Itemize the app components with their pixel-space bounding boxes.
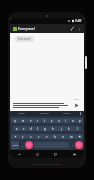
button[interactable]: f bbox=[34, 125, 41, 132]
button[interactable]: o bbox=[69, 117, 76, 124]
button[interactable]: Emoji bbox=[25, 141, 33, 149]
button[interactable]: s bbox=[20, 125, 27, 132]
button[interactable]: , bbox=[20, 141, 25, 149]
button[interactable] bbox=[10, 111, 33, 116]
button[interactable]: Attach bbox=[69, 25, 76, 32]
button[interactable] bbox=[12, 103, 71, 109]
button[interactable]: w bbox=[19, 117, 27, 124]
button[interactable]: a bbox=[13, 125, 20, 132]
staticText: . bbox=[72, 143, 73, 147]
button[interactable]: App icon bbox=[12, 26, 17, 31]
button[interactable]: Send bbox=[73, 102, 80, 109]
button[interactable]: r bbox=[34, 117, 41, 124]
staticText: ?123 bbox=[13, 144, 18, 147]
staticText: a bbox=[16, 127, 18, 131]
button[interactable]: l bbox=[73, 125, 81, 132]
button[interactable]: j bbox=[57, 125, 65, 132]
button[interactable]: n bbox=[59, 133, 67, 140]
button[interactable]: Voice input bbox=[77, 111, 84, 116]
staticText: k bbox=[68, 127, 70, 131]
staticText: b bbox=[54, 135, 56, 139]
staticText: Everyone! bbox=[18, 26, 35, 31]
staticText: l bbox=[77, 127, 78, 131]
button[interactable]: . bbox=[70, 141, 75, 149]
button[interactable]: Recents bbox=[46, 150, 65, 158]
button[interactable]: d bbox=[27, 125, 34, 132]
button[interactable]: Shift bbox=[11, 133, 19, 140]
button[interactable]: i bbox=[62, 117, 69, 124]
staticText: q bbox=[14, 119, 16, 123]
button[interactable]: t bbox=[41, 117, 48, 124]
button[interactable]: More options bbox=[76, 26, 82, 32]
staticText: 9:48 bbox=[75, 19, 82, 23]
staticText: f bbox=[37, 127, 38, 131]
button[interactable]: Everyone! bbox=[15, 36, 34, 42]
staticText: z bbox=[22, 135, 24, 139]
staticText: g bbox=[44, 127, 46, 131]
staticText: y bbox=[51, 119, 53, 123]
button[interactable]: ?123 bbox=[11, 141, 19, 149]
button[interactable]: m bbox=[67, 133, 75, 140]
button[interactable]: Switch keyboard bbox=[65, 150, 84, 158]
button[interactable]: z bbox=[19, 133, 27, 140]
button[interactable]: Enter bbox=[75, 141, 83, 149]
staticText: d bbox=[30, 127, 32, 131]
button[interactable]: u bbox=[55, 117, 62, 124]
button[interactable]: c bbox=[35, 133, 43, 140]
button[interactable]: p bbox=[76, 117, 83, 124]
button[interactable]: q bbox=[11, 117, 19, 124]
button[interactable]: y bbox=[48, 117, 55, 124]
button[interactable]: g bbox=[41, 125, 49, 132]
staticText: u bbox=[58, 119, 60, 123]
staticText: j bbox=[61, 127, 62, 131]
button[interactable]: Everyone! bbox=[18, 26, 69, 31]
staticText: n bbox=[62, 135, 64, 139]
staticText: h bbox=[52, 127, 54, 131]
staticText: r bbox=[37, 119, 39, 123]
staticText: s bbox=[23, 127, 25, 131]
staticText: m bbox=[70, 135, 73, 139]
button[interactable]: Home bbox=[28, 150, 46, 158]
button[interactable] bbox=[55, 111, 77, 116]
staticText: w bbox=[22, 119, 25, 123]
staticText: v bbox=[46, 135, 48, 139]
staticText: o bbox=[72, 119, 74, 123]
button[interactable]: Back bbox=[10, 150, 28, 158]
button[interactable]: x bbox=[27, 133, 35, 140]
button[interactable]: h bbox=[49, 125, 57, 132]
staticText: t bbox=[44, 119, 45, 123]
button[interactable]: k bbox=[65, 125, 73, 132]
staticText: p bbox=[79, 119, 81, 123]
staticText: x bbox=[30, 135, 32, 139]
staticText: 46/3 bbox=[74, 98, 79, 101]
staticText: i bbox=[65, 119, 66, 123]
button[interactable]: b bbox=[51, 133, 59, 140]
staticText: e bbox=[30, 119, 32, 123]
button[interactable]: e bbox=[27, 117, 34, 124]
staticText: , bbox=[22, 143, 23, 147]
staticText: c bbox=[38, 135, 40, 139]
button[interactable] bbox=[33, 111, 55, 116]
button[interactable]: v bbox=[43, 133, 51, 140]
button[interactable]: Backspace bbox=[75, 133, 83, 140]
staticText: Everyone! bbox=[18, 37, 31, 41]
